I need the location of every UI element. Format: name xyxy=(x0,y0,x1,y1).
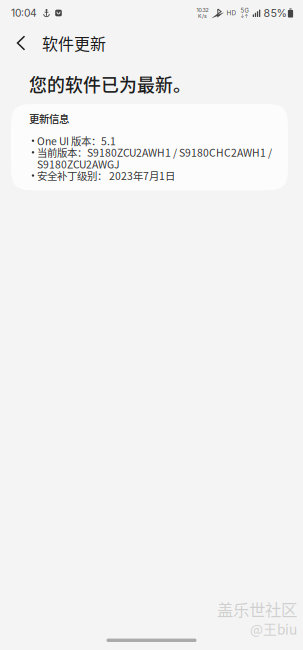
staticText: One UI 版本：5.1 xyxy=(37,133,116,148)
staticText: ↓↑ xyxy=(240,14,248,19)
staticText: K/s xyxy=(198,13,207,19)
staticText: 85% xyxy=(263,6,286,19)
button[interactable]: Back xyxy=(0,26,34,60)
staticText: 当前版本：S9180ZCU2AWH1 / S9180CHC2AWH1 / xyxy=(37,145,272,160)
staticText: 更新信息 xyxy=(29,111,69,126)
staticText: 5G xyxy=(240,7,248,14)
staticText: 安全补丁级别： 2023年7月1日 xyxy=(37,168,175,183)
staticText: 盖乐世社区 xyxy=(217,597,297,621)
staticText: HD xyxy=(226,9,236,17)
staticText: 10:04 xyxy=(11,7,37,19)
staticText: @王biu xyxy=(250,619,297,639)
staticText: S9180ZCU2AWGJ xyxy=(37,156,120,171)
staticText: 您的软件已为最新。 xyxy=(29,71,191,97)
staticText: 10.32 xyxy=(196,7,208,13)
staticText: 软件更新 xyxy=(42,31,106,55)
